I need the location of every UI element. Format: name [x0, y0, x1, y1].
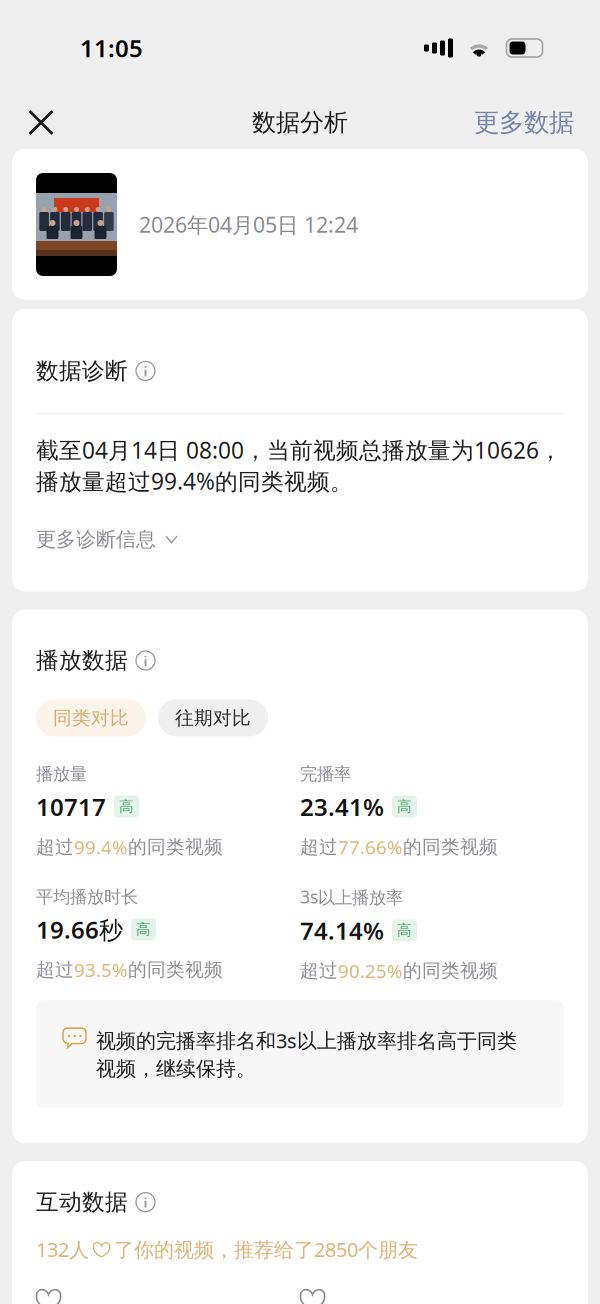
staticText: 更多诊断信息: [36, 527, 156, 552]
button[interactable]: 往期对比: [158, 699, 268, 736]
staticText: 播放数据: [36, 647, 128, 674]
staticText: 超过: [36, 835, 74, 858]
button[interactable]: 更多数据: [452, 95, 600, 150]
staticText: 高: [397, 921, 412, 939]
staticText: 视频，继续保持。: [96, 1057, 256, 1081]
staticText: 高: [136, 920, 151, 938]
staticText: 3s以上播放率: [300, 885, 403, 908]
staticText: 了你的视频，推荐给了2850个朋友: [114, 1236, 418, 1263]
staticText: 同类对比: [53, 706, 129, 729]
staticText: 视频的完播率排名和3s以上播放率排名高于同类: [96, 1027, 517, 1054]
staticText: 的同类视频: [128, 835, 223, 858]
staticText: 77.66%: [338, 834, 403, 859]
staticText: 高: [119, 798, 134, 816]
staticText: 超过: [300, 835, 338, 858]
staticText: 90.25%: [338, 958, 403, 983]
staticText: 完播率: [300, 763, 351, 785]
staticText: 数据分析: [252, 108, 348, 137]
staticText: 93.5%: [74, 957, 128, 982]
staticText: 平均播放时长: [36, 886, 138, 907]
button[interactable]: Close: [0, 98, 76, 146]
staticText: 99.4%: [74, 834, 128, 859]
staticText: 10717: [36, 791, 106, 823]
staticText: 的同类视频: [403, 835, 498, 858]
staticText: 19.66秒: [36, 913, 123, 945]
staticText: 超过: [36, 958, 74, 981]
staticText: 74.14%: [300, 914, 384, 946]
staticText: 2026年04月05日 12:24: [139, 210, 358, 239]
staticText: 播放量: [36, 763, 87, 785]
staticText: 数据诊断: [36, 357, 128, 385]
staticText: 互动数据: [36, 1188, 128, 1216]
button[interactable]: 同类对比: [36, 699, 146, 736]
staticText: 132人: [36, 1236, 89, 1263]
staticText: 的同类视频: [128, 958, 223, 981]
staticText: 超过: [300, 959, 338, 982]
staticText: 截至04月14日 08:00，当前视频总播放量为10626，: [36, 435, 562, 465]
staticText: 更多数据: [474, 107, 574, 138]
staticText: 11:05: [80, 32, 143, 64]
staticText: 播放量超过99.4%的同类视频。: [36, 466, 353, 496]
staticText: 的同类视频: [403, 959, 498, 982]
staticText: 往期对比: [175, 706, 251, 729]
staticText: 23.41%: [300, 791, 384, 823]
staticText: 高: [397, 798, 412, 816]
